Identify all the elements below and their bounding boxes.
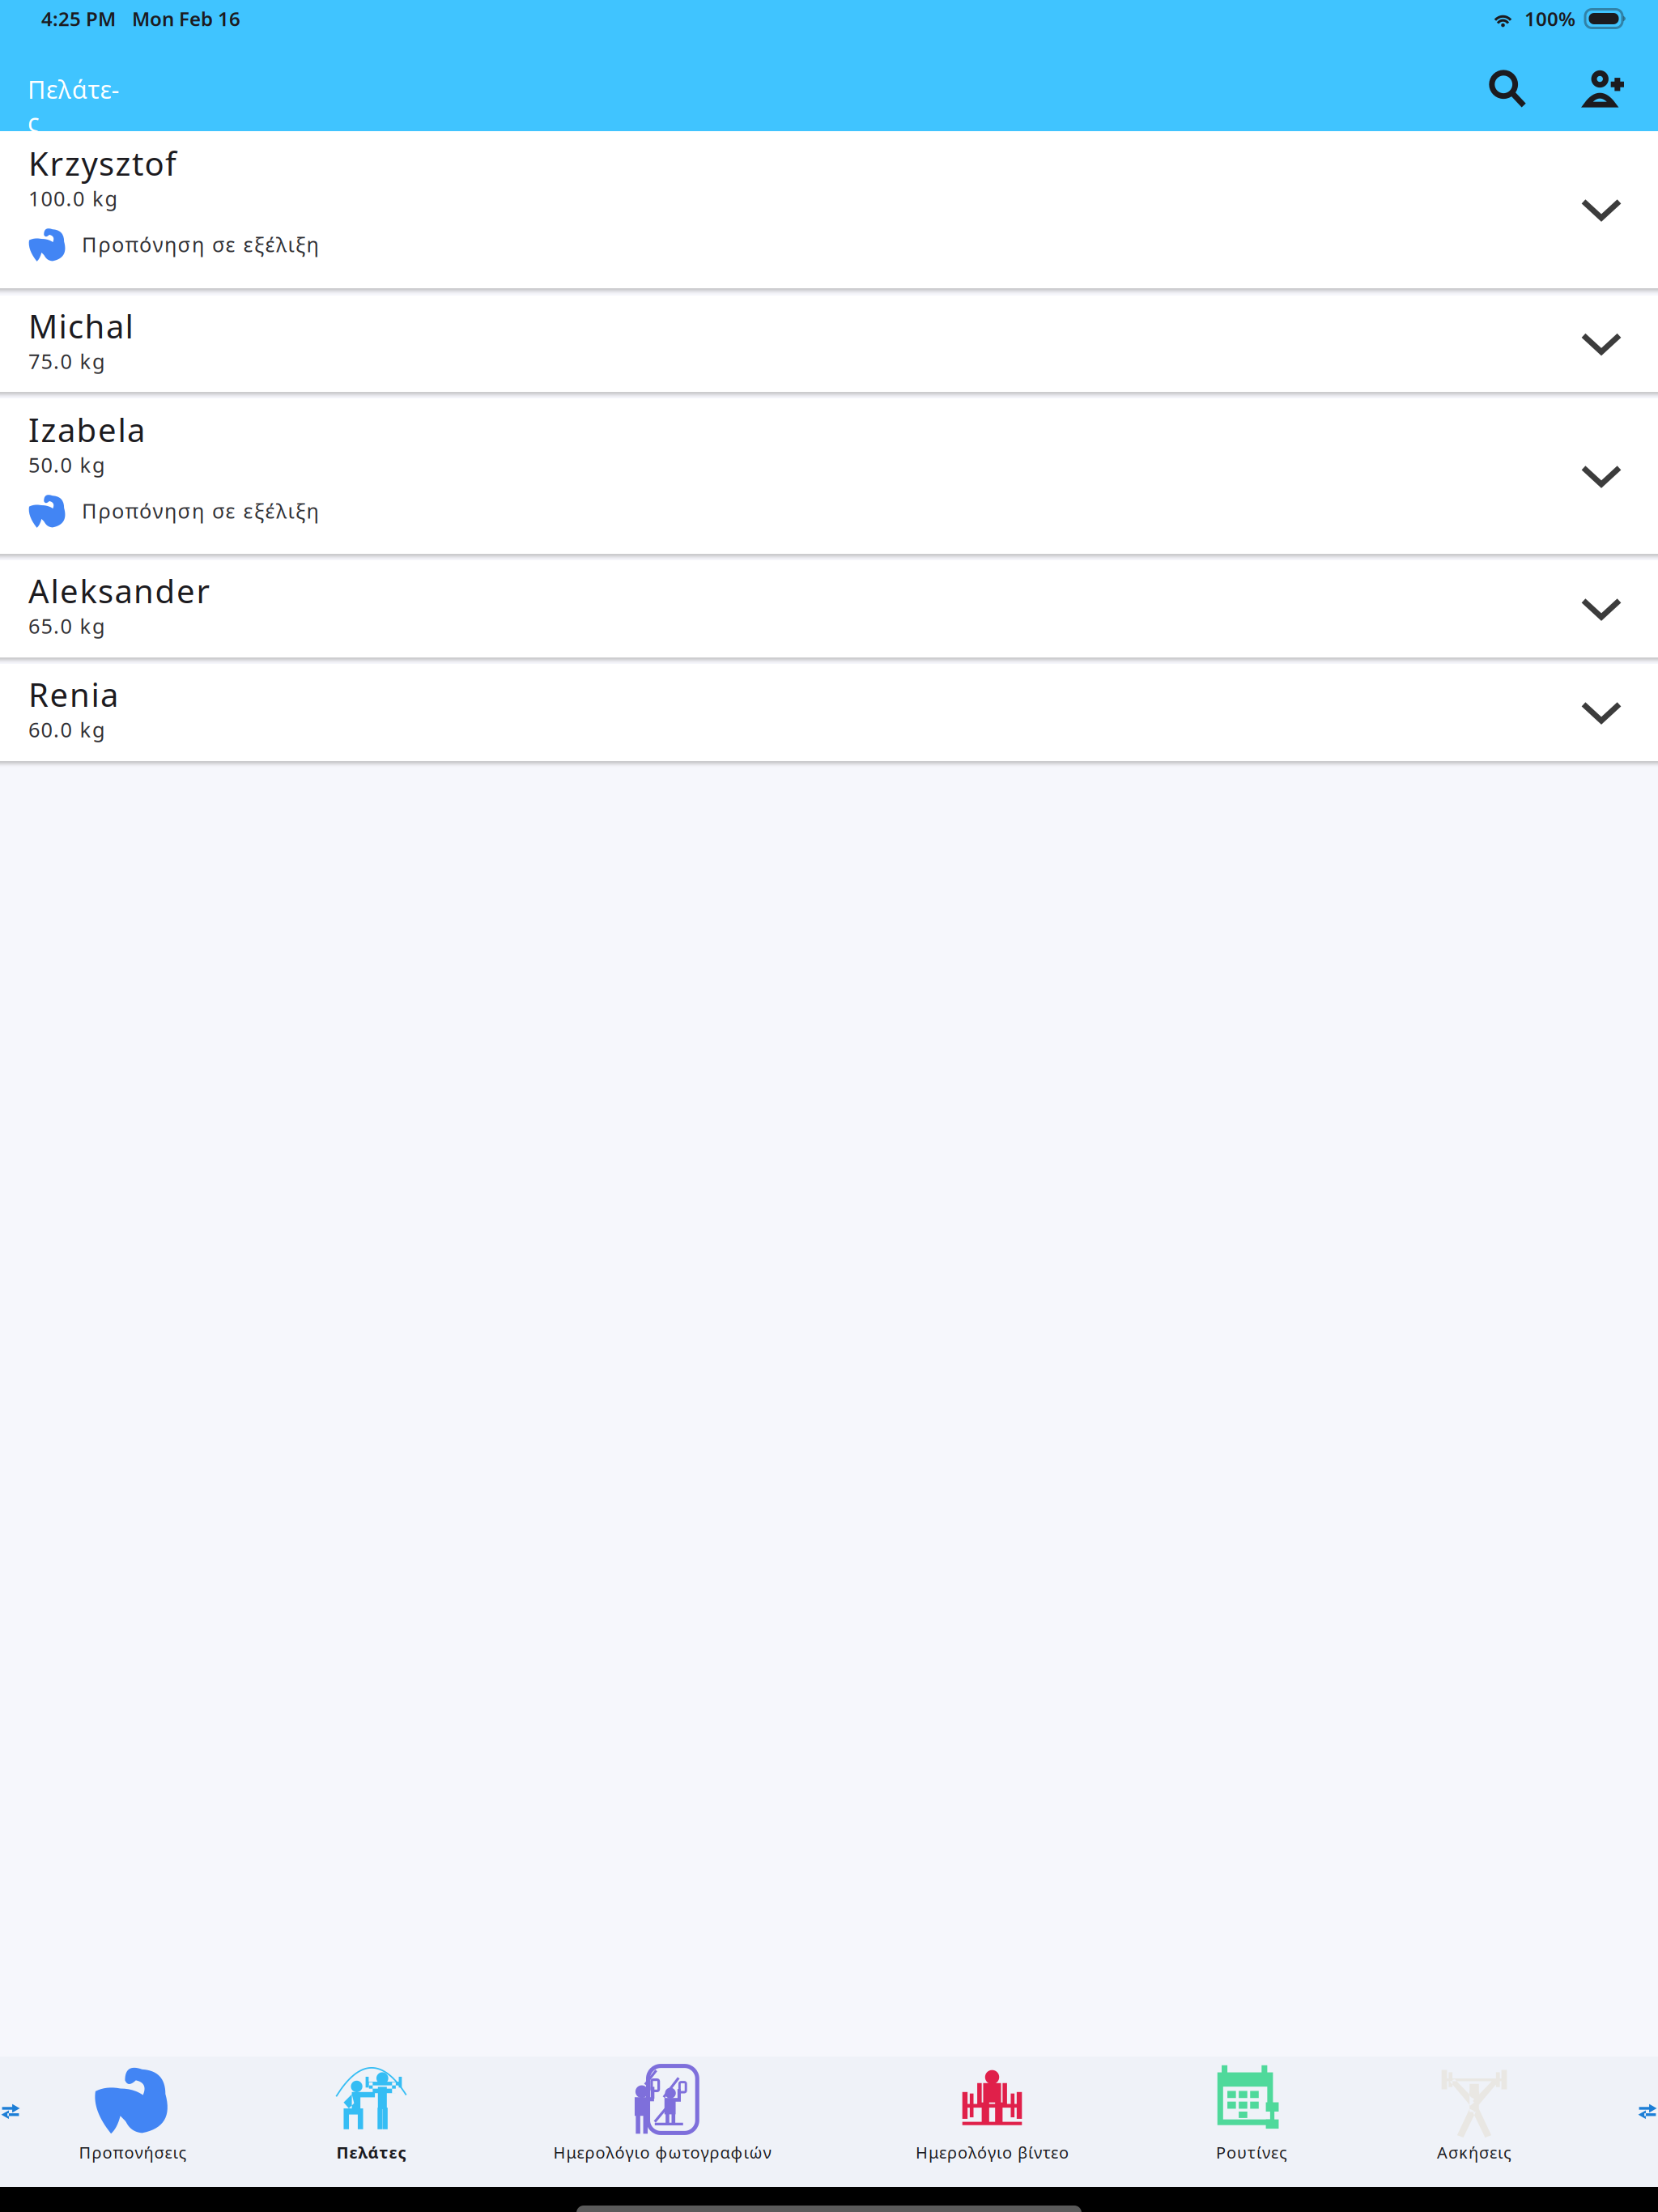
staticText: Michal (28, 304, 133, 347)
staticText: 75.0 kg (28, 347, 105, 375)
staticText: Ημερολόγιο φωτογραφιών (553, 2142, 771, 2163)
staticText: Προπόνηση σε εξέλιξη (82, 231, 319, 258)
button[interactable]: Ρουτίνες (1141, 2057, 1362, 2187)
staticText: Aleksander (28, 569, 210, 612)
button[interactable]: Michal (0, 296, 1658, 392)
button[interactable]: Izabela (0, 398, 1658, 554)
staticText: 100% (1524, 6, 1575, 32)
staticText: Προπόνηση σε εξέλιξη (82, 497, 319, 524)
button[interactable]: Ασκήσεις (1362, 2057, 1587, 2187)
staticText: Ημερολόγιο βίντεο (916, 2142, 1069, 2163)
staticText: Izabela (28, 408, 145, 451)
staticText: Πελάτες (28, 73, 124, 105)
button[interactable]: Προπονήσεις (5, 2057, 261, 2187)
button[interactable]: Krzysztof (0, 131, 1658, 288)
staticText: Ρουτίνες (1216, 2142, 1287, 2163)
staticText: 100.0 kg (28, 185, 118, 212)
staticText: 60.0 kg (28, 716, 105, 743)
staticText: Krzysztof (28, 142, 176, 185)
button[interactable]: Ημερολόγιο φωτογραφιών (482, 2057, 843, 2187)
button[interactable]: Renia (0, 664, 1658, 761)
staticText: 65.0 kg (28, 612, 105, 639)
staticText: Mon Feb 16 (132, 6, 240, 32)
staticText: Πελάτες (336, 2142, 406, 2163)
button[interactable]: Search (1469, 50, 1546, 128)
staticText: 50.0 kg (28, 451, 105, 478)
button[interactable]: Aleksander (0, 560, 1658, 657)
staticText: Ασκήσεις (1437, 2142, 1511, 2163)
staticText: 4:25 PM (41, 6, 116, 32)
button[interactable]: Add client (1566, 50, 1643, 128)
staticText: Προπονήσεις (79, 2142, 187, 2163)
staticText: Renia (28, 673, 118, 716)
button[interactable]: Ημερολόγιο βίντεο (843, 2057, 1141, 2187)
button[interactable]: Πελάτες (261, 2057, 482, 2187)
